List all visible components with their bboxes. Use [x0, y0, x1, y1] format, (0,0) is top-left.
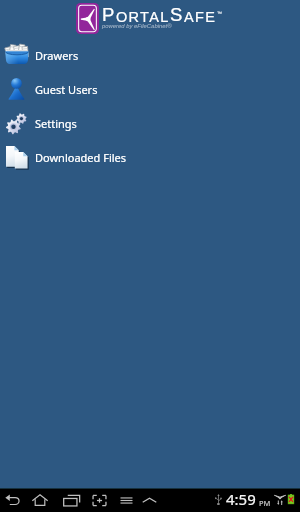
button[interactable]: Home [28, 488, 52, 512]
staticText: P [102, 4, 116, 25]
button[interactable]: Guest Users [0, 72, 300, 106]
button[interactable]: Downloaded Files [0, 140, 300, 174]
staticText: AFE [184, 9, 217, 25]
button[interactable]: Drawers [0, 38, 300, 72]
staticText: Downloaded Files [35, 150, 127, 165]
staticText: powered by eFileCabinet® [102, 23, 172, 30]
staticText: 4:59 [226, 489, 256, 509]
staticText: S [170, 4, 184, 25]
staticText: ORTAL [116, 9, 170, 25]
button[interactable]: Menu [114, 488, 138, 512]
staticText: PM [259, 498, 271, 508]
button[interactable]: Recent apps [59, 488, 83, 512]
staticText: ™ [217, 10, 222, 16]
staticText: Drawers [35, 48, 79, 63]
button[interactable]: Screenshot [87, 488, 111, 512]
button[interactable]: Expand [137, 488, 161, 512]
staticText: Settings [35, 116, 77, 131]
button[interactable]: Back [1, 488, 25, 512]
button[interactable]: Settings [0, 106, 300, 140]
staticText: Guest Users [35, 82, 98, 97]
